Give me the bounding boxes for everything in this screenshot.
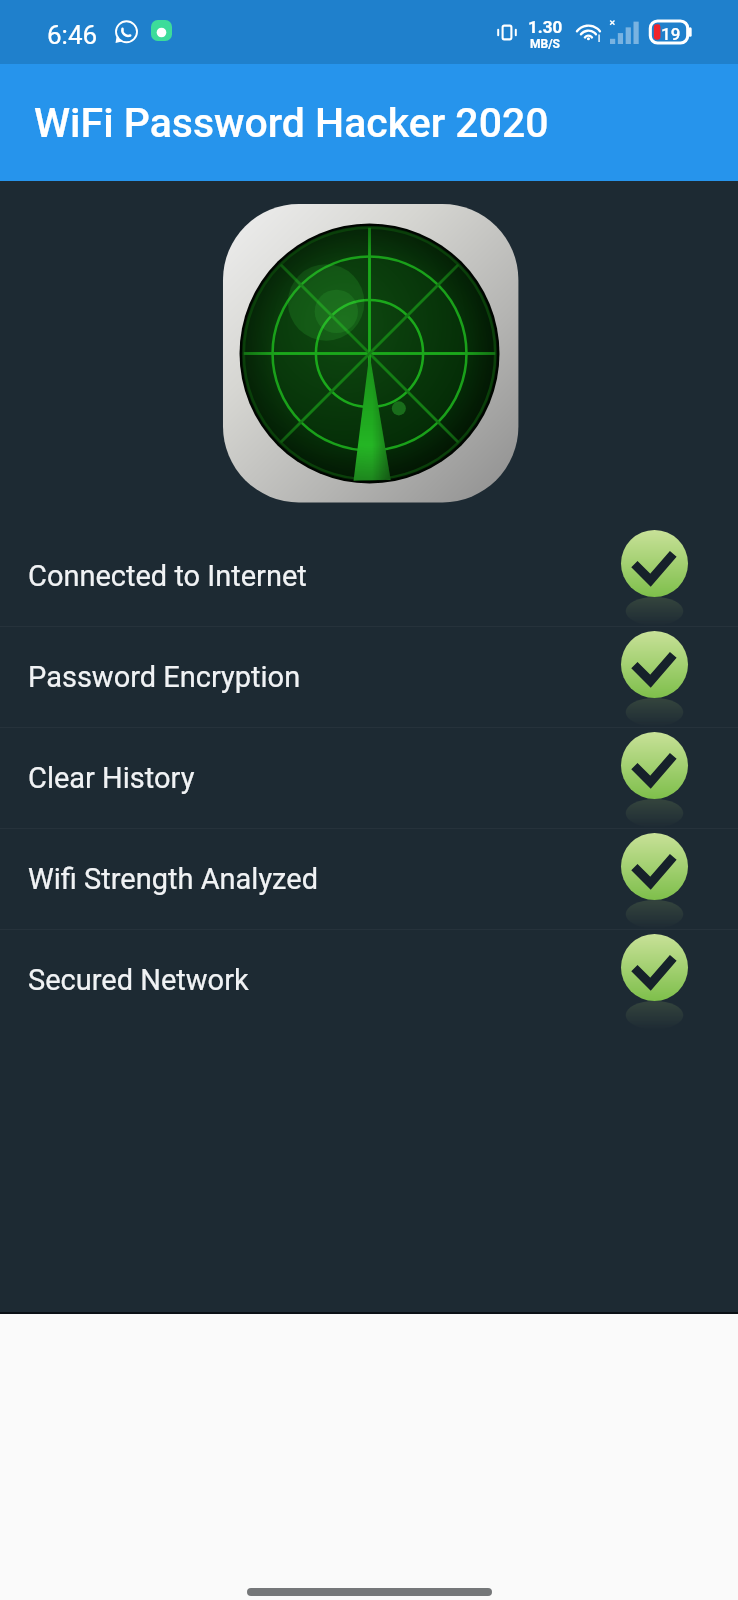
other: Checked <box>621 526 688 626</box>
other: Home gesture <box>247 1588 492 1596</box>
staticText: WiFi Password Hacker 2020 <box>34 99 549 147</box>
button[interactable]: Secured Network <box>0 930 738 1030</box>
button[interactable]: Wifi Strength Analyzed <box>0 829 738 929</box>
staticText: Password Encryption <box>28 660 301 694</box>
staticText: 1.30 <box>528 17 563 37</box>
button[interactable]: WiFi Password Hacker 2020 <box>0 64 738 181</box>
other: Checked <box>621 829 688 929</box>
other: Checked <box>621 627 688 727</box>
other: Checked <box>621 930 688 1030</box>
staticText: Clear History <box>28 761 195 795</box>
button[interactable]: Clear History <box>0 728 738 828</box>
staticText: 6:46 <box>47 20 98 50</box>
staticText: Wifi Strength Analyzed <box>28 862 319 896</box>
staticText: MB/S <box>530 37 561 51</box>
staticText: Secured Network <box>28 963 249 997</box>
button[interactable]: Password Encryption <box>0 627 738 727</box>
button[interactable]: Connected to Internet <box>0 526 738 626</box>
other: Checked <box>621 728 688 828</box>
staticText: 19 <box>661 24 681 44</box>
staticText: Connected to Internet <box>28 559 307 593</box>
